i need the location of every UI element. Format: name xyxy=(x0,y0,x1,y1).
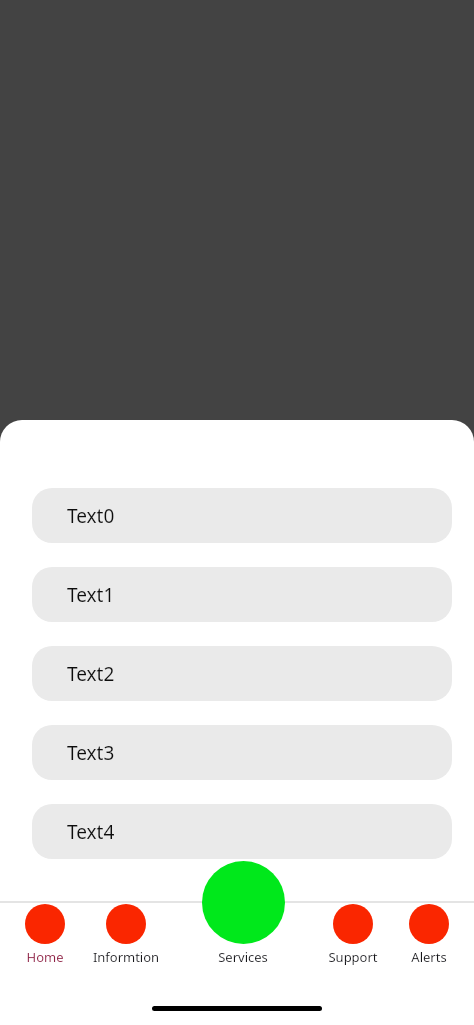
button[interactable]: Text4 xyxy=(32,804,452,859)
button[interactable]: Text3 xyxy=(32,725,452,780)
button[interactable]: Text1 xyxy=(32,567,452,622)
button[interactable]: Home xyxy=(0,904,93,966)
staticText: Home xyxy=(0,948,93,966)
button[interactable]: Support xyxy=(305,904,401,966)
staticText: Informtion xyxy=(78,948,174,966)
button[interactable]: Informtion xyxy=(78,904,174,966)
button[interactable]: Text0 xyxy=(32,488,452,543)
staticText: Text1 xyxy=(67,582,115,608)
staticText: Text2 xyxy=(67,661,115,687)
staticText: Services xyxy=(195,948,291,966)
staticText: Alerts xyxy=(381,948,474,966)
staticText: Text4 xyxy=(67,819,115,845)
staticText: Text0 xyxy=(67,503,115,529)
staticText: Support xyxy=(305,948,401,966)
button[interactable]: Alerts xyxy=(381,904,474,966)
staticText: Text3 xyxy=(67,740,115,766)
button[interactable]: Services xyxy=(195,861,291,966)
button[interactable]: Text2 xyxy=(32,646,452,701)
